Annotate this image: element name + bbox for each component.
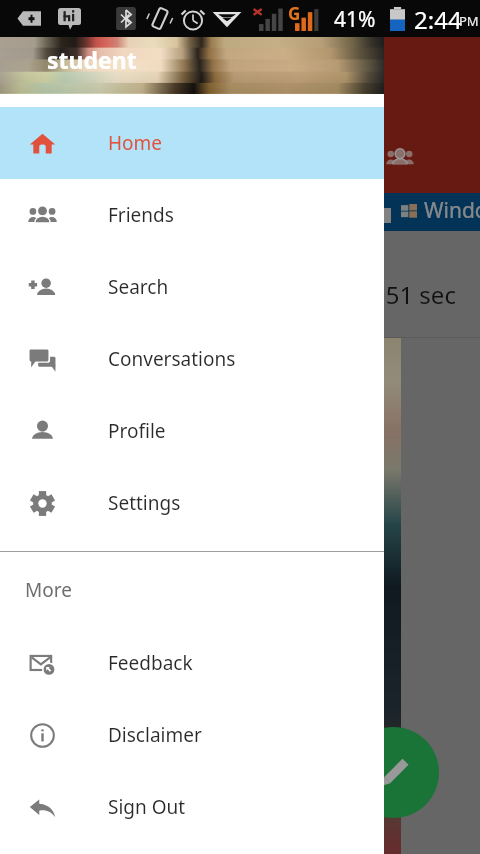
staticText: G	[288, 2, 301, 25]
staticText: student	[47, 44, 137, 75]
staticText: Feedback	[108, 650, 193, 676]
button[interactable]: Home	[0, 107, 384, 179]
staticText: Settings	[108, 490, 181, 516]
staticText: Conversations	[108, 346, 236, 372]
button[interactable]: Conversations	[0, 323, 384, 395]
button[interactable]: Friends	[0, 179, 384, 251]
staticText: Search	[108, 274, 169, 300]
staticText: 2:44	[414, 3, 462, 36]
staticText: Profile	[108, 418, 166, 444]
staticText: More	[25, 577, 72, 603]
button[interactable]: Search	[0, 251, 384, 323]
staticText: 41%	[334, 5, 376, 34]
staticText: Disclaimer	[108, 722, 202, 748]
staticText: PM	[459, 12, 479, 30]
button[interactable]: Disclaimer	[0, 699, 384, 771]
button[interactable]: Sign Out	[0, 771, 384, 843]
button[interactable]: Compose	[348, 727, 439, 818]
staticText: Friends	[108, 202, 174, 228]
button[interactable]: Settings	[0, 467, 384, 539]
staticText: Sign Out	[108, 794, 186, 820]
staticText: Home	[108, 130, 163, 156]
staticText: Windows	[424, 196, 480, 225]
button[interactable]: Profile	[0, 395, 384, 467]
staticText: 1 min 51 sec	[316, 278, 456, 311]
button[interactable]: Feedback	[0, 627, 384, 699]
